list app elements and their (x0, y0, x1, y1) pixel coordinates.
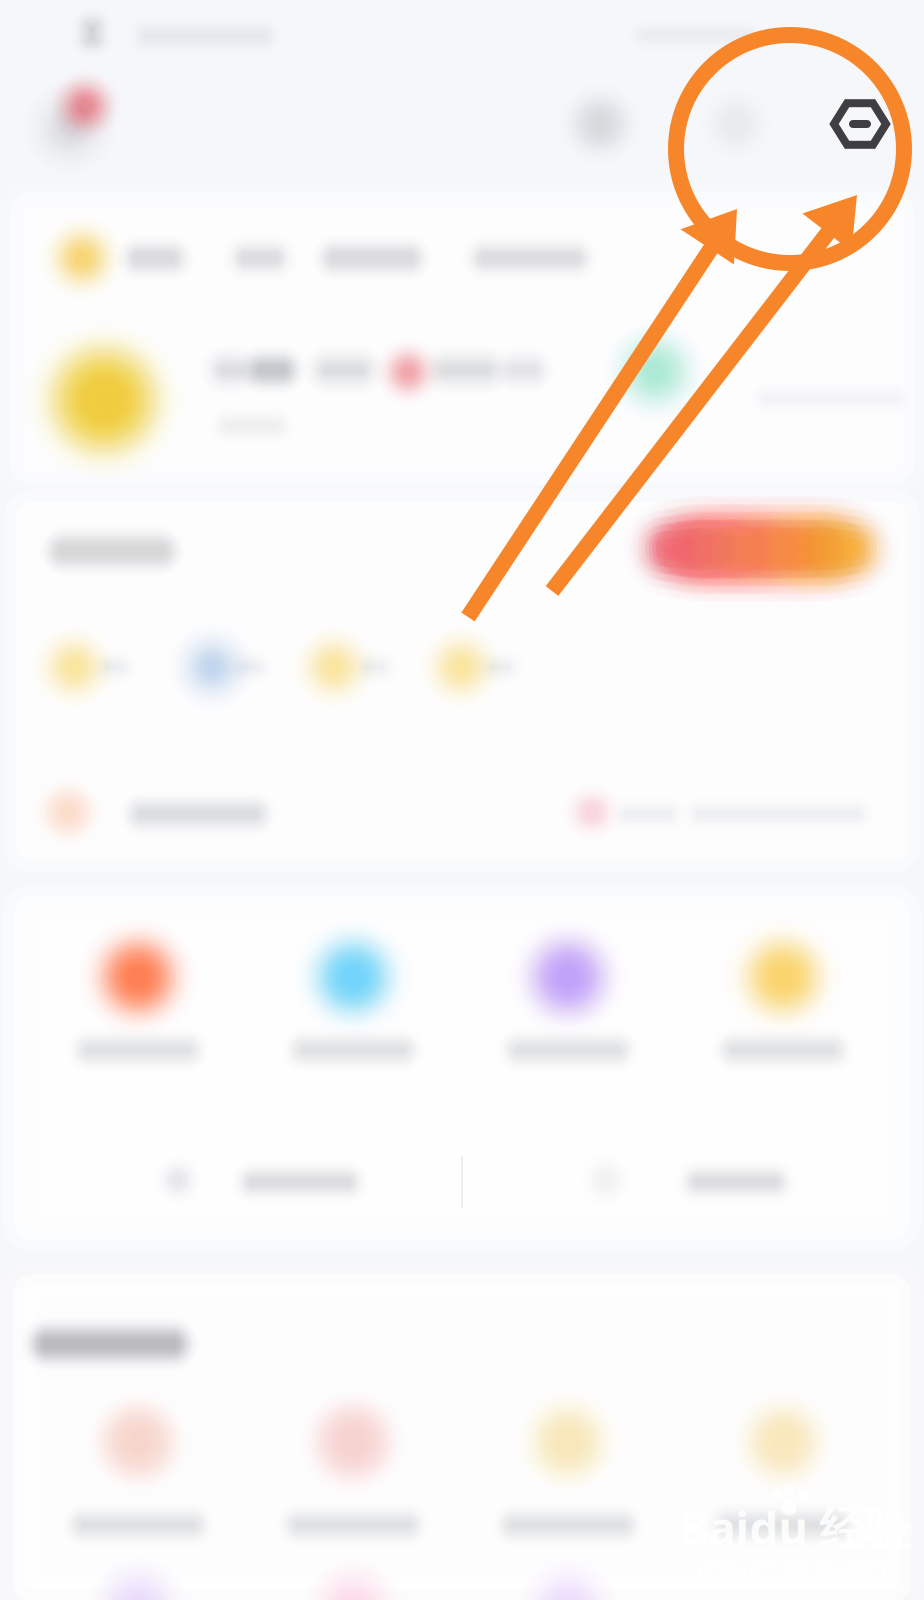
staticText: Baidu 经验 (678, 1497, 909, 1557)
